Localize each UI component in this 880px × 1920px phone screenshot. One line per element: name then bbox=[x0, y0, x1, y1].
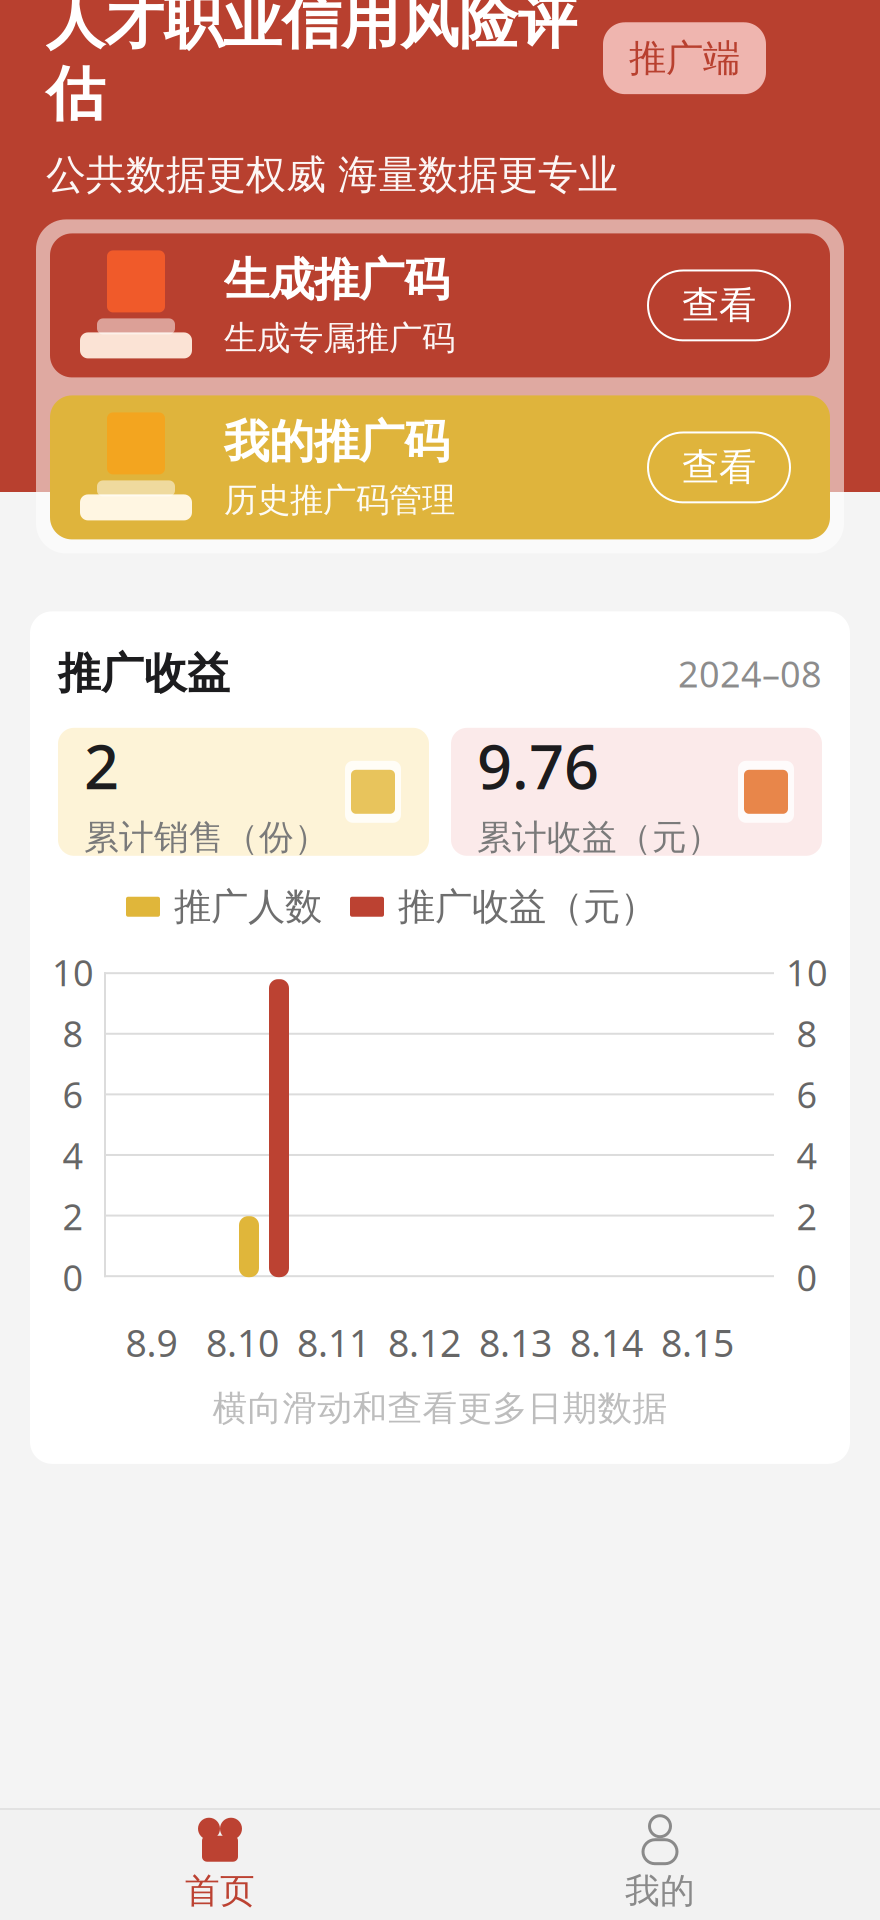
staticText: 8 bbox=[62, 1009, 83, 1057]
button[interactable]: 生成推广码 bbox=[50, 233, 830, 377]
staticText: 推广端 bbox=[629, 35, 740, 81]
staticText: 10 bbox=[52, 948, 94, 996]
staticText: 查看 bbox=[682, 444, 756, 490]
staticText: 生成专属推广码 bbox=[224, 318, 455, 359]
staticText: 累计销售（份） bbox=[84, 816, 329, 859]
staticText: 8.14 bbox=[570, 1318, 643, 1367]
staticText: 8.11 bbox=[297, 1318, 370, 1367]
staticText: 9.76 bbox=[477, 725, 599, 806]
staticText: 横向滑动和查看更多日期数据 bbox=[212, 1387, 667, 1430]
staticText: 4 bbox=[796, 1131, 817, 1179]
staticText: 我的推广码 bbox=[224, 414, 449, 470]
staticText: 推广收益（元） bbox=[398, 884, 657, 930]
staticText: 我的 bbox=[625, 1870, 695, 1912]
staticText: 推广收益 bbox=[58, 647, 230, 700]
staticText: 8.9 bbox=[125, 1318, 177, 1367]
staticText: 8.12 bbox=[388, 1318, 461, 1367]
staticText: 首页 bbox=[185, 1870, 255, 1912]
staticText: 2024–08 bbox=[678, 650, 822, 697]
staticText: 公共数据更权威 海量数据更专业 bbox=[46, 150, 618, 199]
staticText: 10 bbox=[786, 948, 828, 996]
staticText: 8.10 bbox=[206, 1318, 279, 1367]
staticText: 查看 bbox=[682, 282, 756, 328]
staticText: 2 bbox=[796, 1192, 817, 1240]
staticText: 历史推广码管理 bbox=[224, 480, 455, 521]
staticText: 累计收益（元） bbox=[477, 816, 722, 859]
staticText: 6 bbox=[62, 1070, 83, 1118]
staticText: 生成推广码 bbox=[224, 252, 449, 308]
button[interactable]: 首页 bbox=[0, 1810, 440, 1920]
staticText: 2 bbox=[84, 725, 119, 806]
staticText: 0 bbox=[796, 1253, 817, 1301]
staticText: 推广人数 bbox=[174, 884, 322, 930]
staticText: 人才职业信用风险评估 bbox=[46, 0, 577, 130]
staticText: 8.13 bbox=[479, 1318, 552, 1367]
staticText: 4 bbox=[62, 1131, 83, 1179]
staticText: 0 bbox=[62, 1253, 83, 1301]
staticText: 8 bbox=[796, 1009, 817, 1057]
staticText: 6 bbox=[796, 1070, 817, 1118]
staticText: 8.15 bbox=[661, 1318, 734, 1367]
button[interactable]: 我的 bbox=[440, 1810, 880, 1920]
button[interactable]: 我的推广码 bbox=[50, 395, 830, 539]
staticText: 2 bbox=[62, 1192, 83, 1240]
